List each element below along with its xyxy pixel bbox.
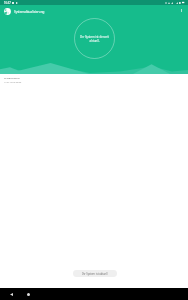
staticText: Ihr System ist derzeit aktuell. [80,35,109,43]
staticText: Ihr System ist aktuell [82,272,108,276]
button[interactable]: Back [5,288,17,300]
staticText: Systemaktualisierung [14,10,45,14]
staticText: 16:37 [4,1,11,5]
button[interactable]: Home [22,288,34,300]
button[interactable]: Ihr System ist aktuell [73,270,117,277]
staticText: 17.01.2019 09:06 [4,81,22,84]
button[interactable]: More options [175,4,187,16]
staticText: Systemstatus [4,76,20,79]
